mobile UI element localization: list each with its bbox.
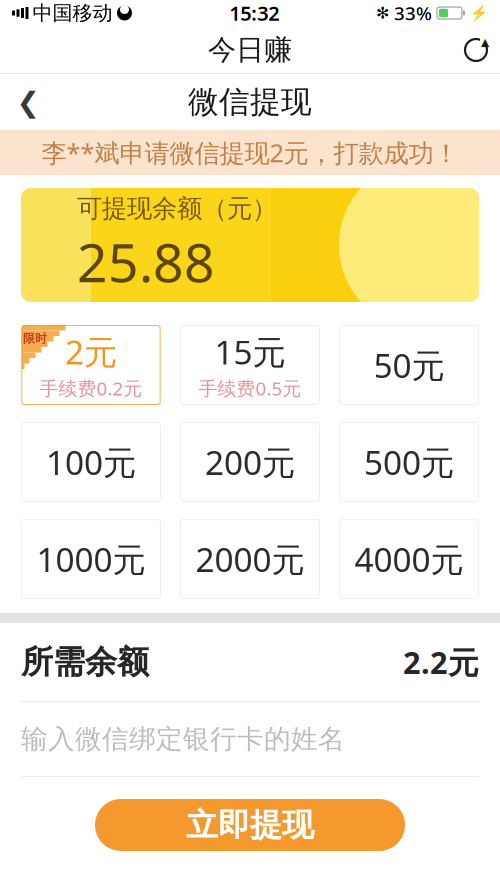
staticText: 15:32 [229,0,279,26]
staticText: 50元 [373,343,444,387]
button[interactable]: 100元 [21,422,160,502]
staticText: ▲ [481,36,489,48]
staticText: 手续费0.5元 [198,376,301,400]
staticText: ⚡ [470,5,488,21]
staticText: 500元 [364,440,454,484]
staticText: 立即提现 [186,805,314,845]
button[interactable]: 刷新 [452,26,500,74]
button[interactable]: 立即提现 [95,799,405,851]
button[interactable]: 500元 [339,422,478,502]
staticText: 4000元 [354,537,463,581]
staticText: 2000元 [195,537,304,581]
staticText: 微信提现 [188,83,312,121]
staticText: 25.88 [77,226,215,297]
staticText: 手续费0.2元 [39,376,142,400]
staticText: 限时 [23,331,47,346]
staticText: 1000元 [36,537,145,581]
staticText: 所需余额 [21,642,149,682]
staticText: 33% [394,1,432,25]
staticText: 2.2元 [403,642,479,682]
staticText: 输入微信绑定银行卡的姓名 [21,723,345,755]
staticText: ✻ [376,4,389,22]
staticText: 今日赚 [208,33,292,67]
button[interactable]: 2000元 [180,519,319,599]
staticText: 李**斌申请微信提现2元，打款成功！ [41,136,458,169]
staticText: 100元 [46,440,136,484]
button[interactable]: 返回 [0,74,56,130]
staticText: 中国移动 [32,1,112,25]
button[interactable]: 15元 [180,325,319,405]
staticText: ❮ [16,86,39,118]
button[interactable]: 4000元 [339,519,478,599]
button[interactable]: 1000元 [21,519,160,599]
staticText: 可提现余额（元） [77,193,277,224]
button[interactable]: 50元 [339,325,478,405]
button[interactable]: 200元 [180,422,319,502]
staticText: 200元 [205,440,295,484]
button[interactable]: 限时 [21,325,160,405]
staticText: 2元 [65,329,117,374]
staticText: 15元 [214,329,285,374]
